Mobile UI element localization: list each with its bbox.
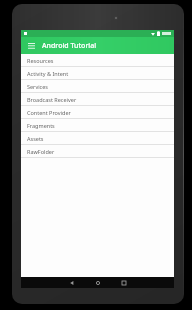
staticText: Fragments: [27, 122, 55, 129]
staticText: Activity & Intent: [27, 70, 69, 77]
button[interactable]: Assets: [21, 132, 174, 145]
button[interactable]: RawFolder: [21, 145, 174, 158]
button[interactable]: Resources: [21, 54, 174, 67]
button[interactable]: Services: [21, 80, 174, 93]
button[interactable]: Open navigation drawer: [26, 40, 37, 51]
staticText: Content Provider: [27, 109, 71, 116]
staticText: Services: [27, 83, 48, 90]
staticText: Assets: [27, 135, 44, 142]
button[interactable]: Home: [85, 277, 111, 288]
button[interactable]: Activity & Intent: [21, 67, 174, 80]
staticText: Broadcast Receiver: [27, 96, 77, 103]
button[interactable]: Fragments: [21, 119, 174, 132]
staticText: Android Tutorial: [42, 41, 97, 51]
button[interactable]: Recent apps: [111, 277, 137, 288]
staticText: RawFolder: [27, 148, 55, 155]
staticText: Resources: [27, 57, 54, 64]
button[interactable]: Broadcast Receiver: [21, 93, 174, 106]
button[interactable]: Content Provider: [21, 106, 174, 119]
button[interactable]: Back: [59, 277, 85, 288]
